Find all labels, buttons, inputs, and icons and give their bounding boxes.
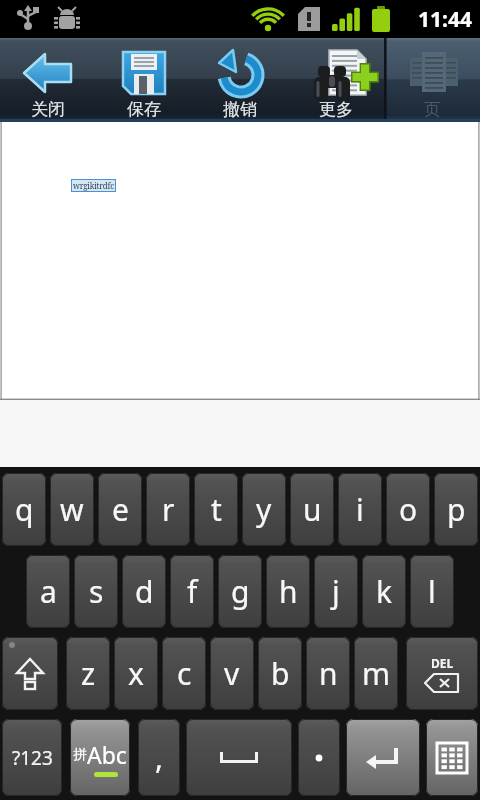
button[interactable]: i	[338, 473, 382, 546]
button[interactable]: t	[194, 473, 238, 546]
button[interactable]: m	[354, 637, 398, 710]
staticText: e	[112, 489, 129, 530]
button[interactable]: 关闭	[0, 38, 96, 122]
button[interactable]: 更多	[288, 38, 384, 122]
staticText: r	[162, 489, 175, 530]
staticText: Abc	[87, 739, 127, 770]
button[interactable]: l	[410, 555, 454, 628]
button[interactable]: u	[290, 473, 334, 546]
button[interactable]: ?123	[2, 719, 62, 796]
button[interactable]: ,	[138, 719, 180, 796]
button[interactable]: k	[362, 555, 406, 628]
button[interactable]: c	[162, 637, 206, 710]
button[interactable]: 页	[384, 38, 480, 122]
staticText: i	[356, 489, 364, 530]
staticText: o	[399, 489, 418, 530]
button[interactable]: s	[74, 555, 118, 628]
staticText: 页	[424, 99, 441, 120]
button[interactable]: e	[98, 473, 142, 546]
button[interactable]	[346, 719, 420, 796]
staticText: p	[447, 489, 466, 530]
button[interactable]: v	[210, 637, 254, 710]
staticText: b	[271, 653, 290, 694]
staticText: f	[187, 571, 198, 612]
staticText: u	[303, 489, 322, 530]
button[interactable]: y	[242, 473, 286, 546]
button[interactable]	[186, 719, 292, 796]
staticText: d	[135, 571, 154, 612]
button[interactable]: g	[218, 555, 262, 628]
staticText: wrgikitrdfc	[73, 180, 114, 191]
button[interactable]: z	[66, 637, 110, 710]
staticText: a	[40, 571, 57, 612]
button[interactable]	[298, 719, 340, 796]
button[interactable]: DEL	[406, 637, 478, 710]
staticText: g	[231, 571, 250, 612]
button[interactable]: p	[434, 473, 478, 546]
button[interactable]: 保存	[96, 38, 192, 122]
button[interactable]: 撤销	[192, 38, 288, 122]
button[interactable]: b	[258, 637, 302, 710]
button[interactable]: d	[122, 555, 166, 628]
staticText: 11:44	[418, 5, 472, 34]
staticText: l	[428, 571, 436, 612]
button[interactable]: h	[266, 555, 310, 628]
staticText: 更多	[319, 99, 353, 120]
staticText: m	[362, 653, 391, 694]
staticText: q	[15, 489, 34, 530]
button[interactable]: f	[170, 555, 214, 628]
button[interactable]	[426, 719, 478, 796]
button[interactable]: j	[314, 555, 358, 628]
staticText: h	[279, 571, 298, 612]
staticText: c	[177, 653, 192, 694]
button[interactable]: 拼	[70, 719, 130, 796]
staticText: DEL	[431, 655, 454, 671]
staticText: 撤销	[223, 99, 257, 120]
staticText: j	[332, 571, 340, 612]
staticText: n	[319, 653, 338, 694]
staticText: v	[224, 653, 240, 694]
staticText: x	[128, 653, 144, 694]
button[interactable]: q	[2, 473, 46, 546]
staticText: 关闭	[31, 99, 65, 120]
button[interactable]	[2, 637, 58, 710]
button[interactable]: w	[50, 473, 94, 546]
button[interactable]: o	[386, 473, 430, 546]
button[interactable]: x	[114, 637, 158, 710]
button[interactable]: a	[26, 555, 70, 628]
staticText: s	[89, 571, 104, 612]
button[interactable]: n	[306, 637, 350, 710]
staticText: z	[81, 653, 96, 694]
button[interactable]: r	[146, 473, 190, 546]
staticText: ,	[155, 737, 164, 778]
staticText: 保存	[127, 99, 161, 120]
staticText: k	[376, 571, 393, 612]
staticText: t	[211, 489, 222, 530]
staticText: 拼	[73, 746, 87, 764]
staticText: w	[60, 489, 84, 530]
staticText: ?123	[12, 745, 53, 771]
staticText: y	[256, 489, 272, 530]
